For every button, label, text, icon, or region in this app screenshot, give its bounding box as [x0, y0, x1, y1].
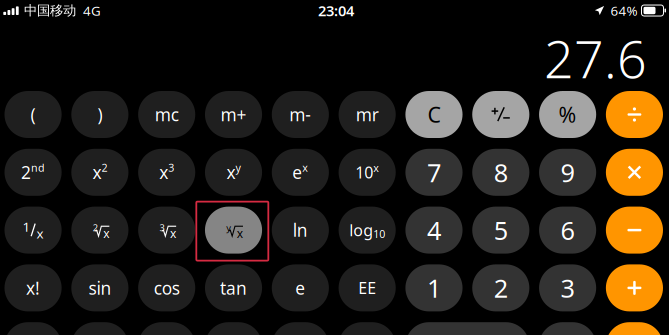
staticText: 9 — [561, 155, 575, 189]
staticText: x — [170, 225, 176, 241]
staticText: x — [92, 161, 101, 184]
button[interactable]: m- — [272, 91, 329, 138]
staticText: 2 — [101, 160, 107, 175]
button[interactable]: ) — [71, 91, 128, 138]
button[interactable]: 7 — [405, 149, 462, 196]
button[interactable]: 10 — [339, 149, 396, 196]
button[interactable]: y — [205, 207, 262, 254]
button[interactable]: Multiply — [606, 149, 663, 196]
staticText: 2 — [93, 221, 98, 234]
button[interactable]: log — [339, 207, 396, 254]
staticText: x! — [26, 276, 40, 299]
button[interactable]: m+ — [205, 91, 262, 138]
button[interactable]: mr — [339, 91, 396, 138]
button[interactable]: tan — [205, 264, 262, 311]
button[interactable]: x — [138, 149, 195, 196]
button[interactable]: e — [272, 149, 329, 196]
button[interactable]: 2 — [472, 264, 529, 311]
button[interactable]: cos — [138, 264, 195, 311]
staticText: C — [427, 100, 440, 129]
button[interactable]: 2 — [71, 207, 128, 254]
staticText: 4G — [83, 2, 101, 19]
staticText: cos — [154, 276, 180, 299]
staticText: x — [226, 161, 235, 184]
button[interactable]: 9 — [539, 149, 596, 196]
staticText: x — [373, 161, 379, 175]
staticText: y — [226, 221, 231, 234]
button[interactable]: sinh — [71, 322, 128, 335]
staticText: 3 — [561, 271, 575, 305]
button[interactable]: C — [405, 91, 462, 138]
button[interactable]: EE — [339, 264, 396, 311]
button[interactable]: x — [71, 149, 128, 196]
staticText: 4 — [427, 213, 441, 247]
staticText: 5 — [494, 213, 508, 247]
button[interactable]: tanh — [205, 322, 262, 335]
staticText: EE — [358, 277, 376, 298]
button[interactable]: cosh — [138, 322, 195, 335]
staticText: 23:04 — [318, 1, 354, 20]
staticText: ln — [293, 219, 308, 242]
button[interactable]: 3 — [138, 207, 195, 254]
button[interactable]: 1 — [405, 264, 462, 311]
staticText: 1 — [23, 218, 31, 235]
staticText: 7 — [427, 155, 441, 189]
button[interactable]: e — [272, 264, 329, 311]
staticText: 64% — [610, 2, 637, 19]
staticText: % — [559, 100, 577, 129]
button[interactable]: Rand — [339, 322, 396, 335]
button[interactable]: 2 — [4, 149, 62, 196]
staticText: 1 — [427, 271, 441, 305]
staticText: ( — [31, 103, 36, 126]
staticText: 27.6 — [544, 23, 647, 93]
staticText: x — [302, 160, 308, 175]
button[interactable]: x — [205, 149, 262, 196]
button[interactable]: sin — [71, 264, 128, 311]
staticText: x — [103, 225, 109, 241]
staticText: 10 — [355, 162, 373, 183]
staticText: 中国移动 — [24, 2, 76, 19]
staticText: sin — [88, 276, 111, 299]
button[interactable]: Add — [606, 264, 663, 311]
button[interactable]: Equals — [606, 322, 663, 335]
staticText: tan — [220, 276, 247, 299]
staticText: 2 — [21, 161, 31, 184]
button[interactable]: % — [539, 91, 596, 138]
staticText: 3 — [168, 160, 174, 175]
button[interactable]: 0 — [405, 322, 529, 335]
button[interactable]: ( — [4, 91, 62, 138]
staticText: m+ — [220, 103, 246, 126]
staticText: e — [292, 161, 302, 184]
button[interactable]: Rad — [4, 322, 62, 335]
button[interactable]: Subtract — [606, 207, 663, 254]
button[interactable]: 6 — [539, 207, 596, 254]
button[interactable]: 4 — [405, 207, 462, 254]
staticText: mc — [155, 103, 179, 126]
staticText: 8 — [494, 155, 508, 189]
staticText: x — [237, 225, 243, 241]
button[interactable]: Plus or minus — [472, 91, 529, 138]
button[interactable]: 5 — [472, 207, 529, 254]
staticText: x — [159, 161, 168, 184]
button[interactable]: Divide — [606, 91, 663, 138]
button[interactable]: . — [539, 322, 596, 335]
staticText: m- — [289, 103, 311, 126]
button[interactable]: ln — [272, 207, 329, 254]
button[interactable]: x! — [4, 264, 62, 311]
button[interactable]: 8 — [472, 149, 529, 196]
button[interactable]: π — [272, 322, 329, 335]
staticText: 6 — [561, 213, 575, 247]
button[interactable]: mc — [138, 91, 195, 138]
button[interactable]: 1 — [4, 207, 62, 254]
staticText: e — [295, 276, 305, 299]
button[interactable]: 3 — [539, 264, 596, 311]
staticText: 10 — [373, 227, 385, 241]
staticText: 3 — [160, 221, 165, 234]
staticText: mr — [356, 103, 379, 126]
staticText: x — [37, 224, 44, 242]
staticText: y — [235, 160, 240, 175]
staticText: log — [349, 219, 373, 241]
